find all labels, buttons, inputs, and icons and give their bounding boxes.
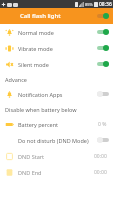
button[interactable]: Call flash light (0, 8, 113, 24)
staticText: Do not disturb (DND Mode) (18, 137, 97, 144)
button[interactable]: Battery percent (0, 116, 113, 132)
button[interactable]: Normal mode (0, 24, 113, 40)
staticText: DND End (18, 169, 94, 176)
button[interactable]: Toggle on (97, 13, 109, 19)
staticText: 0 % (98, 121, 107, 128)
staticText: 08:36 (99, 1, 112, 8)
staticText: Notification Apps (18, 91, 97, 98)
staticText: DND Start (18, 153, 94, 160)
button[interactable]: Do not disturb (DND Mode) (0, 132, 113, 148)
staticText: 00:00 (94, 153, 107, 160)
button[interactable]: Notification Apps (0, 86, 113, 102)
staticText: Advance (5, 76, 27, 83)
button[interactable]: Silent mode (0, 56, 113, 72)
button[interactable]: DND End (0, 164, 113, 180)
staticText: Call flash light (20, 12, 61, 20)
button[interactable]: Toggle off (97, 91, 109, 97)
staticText: Normal mode (18, 29, 97, 36)
button[interactable]: Toggle on (97, 29, 109, 35)
staticText: Battery percent (18, 121, 98, 128)
staticText: Silent mode (18, 61, 97, 68)
staticText: Vibrate mode (18, 45, 97, 52)
button[interactable]: Toggle on (97, 61, 109, 67)
button[interactable]: DND Start (0, 148, 113, 164)
button[interactable]: Vibrate mode (0, 40, 113, 56)
staticText: 00:00 (94, 169, 107, 176)
button[interactable]: Toggle on (97, 45, 109, 51)
staticText: 85% (85, 2, 93, 7)
button[interactable]: Toggle off (97, 137, 109, 143)
staticText: Disable when battery below (5, 106, 77, 113)
